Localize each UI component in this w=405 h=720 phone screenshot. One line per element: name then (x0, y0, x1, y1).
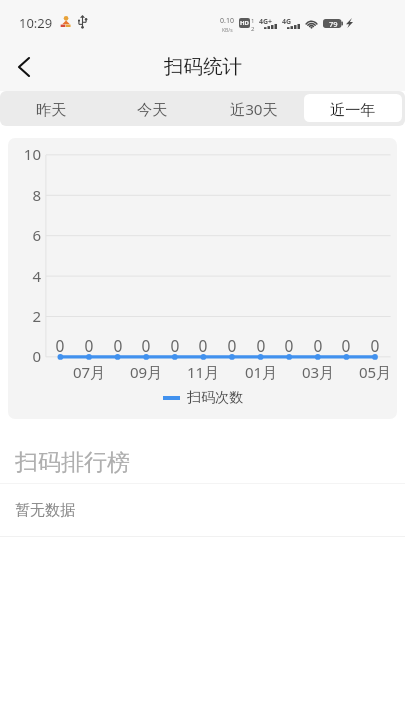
staticText: 暂无数据 (15, 501, 75, 520)
staticText: 今天 (137, 100, 168, 119)
staticText: 6 (8, 225, 41, 245)
staticText: 2 (251, 25, 255, 33)
staticText: 0 (8, 346, 41, 366)
staticText: 01月 (239, 362, 283, 382)
staticText: 0 (365, 335, 385, 356)
staticText: 8 (8, 185, 41, 205)
staticText: 0 (165, 335, 185, 356)
staticText: 4G (282, 17, 292, 27)
button[interactable]: 昨天 (0, 94, 102, 122)
staticText: 0 (336, 335, 356, 356)
button[interactable]: 近30天 (203, 94, 304, 122)
staticText: 0 (108, 335, 128, 356)
staticText: 11月 (181, 362, 225, 382)
staticText: 03月 (296, 362, 340, 382)
staticText: 近一年 (330, 100, 376, 119)
staticText: 0 (222, 335, 242, 356)
staticText: HD (240, 19, 249, 27)
staticText: 07月 (67, 362, 111, 382)
staticText: 扫码统计 (164, 54, 242, 79)
staticText: 0 (193, 335, 213, 356)
staticText: 扫码次数 (187, 389, 243, 407)
staticText: 0 (79, 335, 99, 356)
staticText: 扫码排行榜 (15, 448, 130, 477)
staticText: 79 (329, 19, 338, 28)
button[interactable]: 今天 (102, 94, 203, 122)
staticText: 4G+ (259, 17, 273, 27)
staticText: KB/s (222, 27, 233, 34)
staticText: 0 (50, 335, 70, 356)
staticText: 10 (8, 144, 41, 164)
staticText: 05月 (353, 362, 397, 382)
button[interactable]: Back (2, 47, 44, 89)
staticText: 0 (251, 335, 271, 356)
staticText: 0.10 (220, 16, 234, 26)
staticText: 昨天 (36, 100, 67, 119)
staticText: 0 (308, 335, 328, 356)
staticText: 4 (8, 266, 41, 286)
staticText: 1 (251, 17, 255, 25)
staticText: 2 (8, 306, 41, 326)
staticText: 近30天 (230, 99, 278, 120)
staticText: 0 (136, 335, 156, 356)
staticText: 10:29 (19, 14, 53, 32)
staticText: 09月 (124, 362, 168, 382)
staticText: 0 (279, 335, 299, 356)
button[interactable]: 近一年 (304, 94, 402, 122)
